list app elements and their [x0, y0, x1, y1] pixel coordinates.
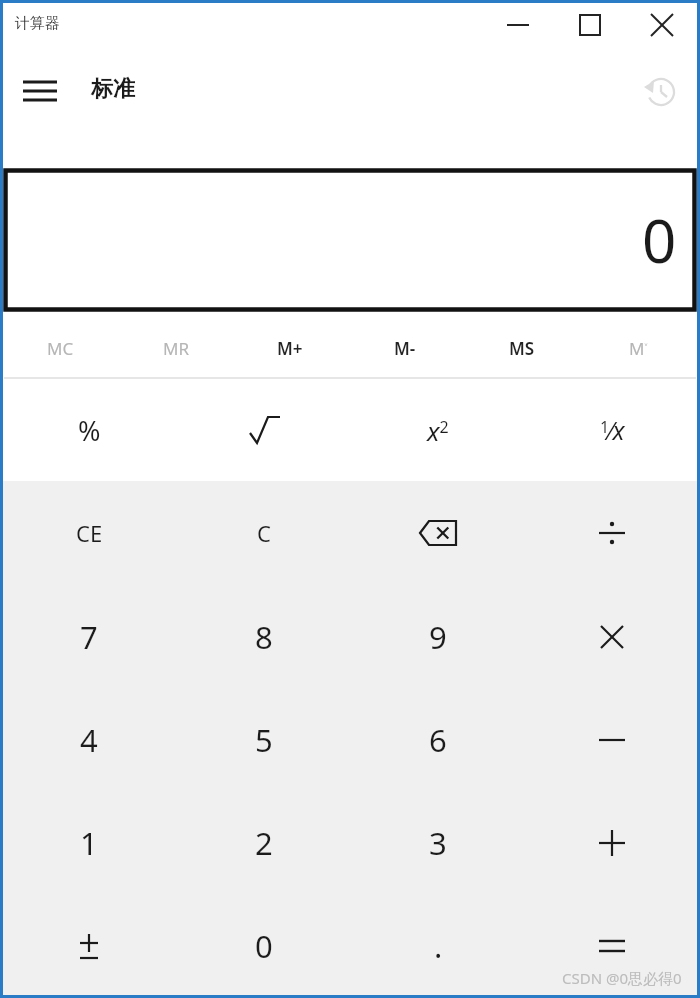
button[interactable]: Menu — [10, 64, 70, 118]
button[interactable]: Plus minus — [2, 894, 176, 997]
staticText: 8 — [255, 616, 273, 658]
staticText: MC — [47, 337, 74, 360]
button[interactable]: M- — [350, 321, 460, 375]
button[interactable]: MC — [5, 321, 115, 375]
staticText: MS — [509, 337, 535, 360]
button[interactable]: Close — [626, 2, 698, 48]
button[interactable]: Square — [351, 380, 525, 480]
button[interactable]: Maximize — [554, 2, 626, 48]
staticText: 0 — [255, 925, 273, 967]
button[interactable]: Equals — [525, 894, 699, 997]
staticText: 3 — [429, 822, 447, 864]
button[interactable]: 6 — [351, 688, 525, 791]
button[interactable]: 8 — [177, 585, 351, 688]
button[interactable]: Minimize — [482, 2, 554, 48]
button[interactable]: Plus — [525, 791, 699, 894]
staticText: % — [78, 412, 101, 449]
staticText: M˅ — [629, 337, 648, 360]
button[interactable]: Reciprocal — [525, 380, 699, 480]
button[interactable]: Clear entry — [2, 481, 176, 584]
staticText: 9 — [429, 616, 447, 658]
button[interactable]: 0 — [177, 894, 351, 997]
staticText: 5 — [255, 719, 273, 761]
button[interactable]: Decimal — [351, 894, 525, 997]
staticText: 7 — [80, 616, 98, 658]
staticText: M- — [394, 337, 416, 360]
button[interactable]: 2 — [177, 791, 351, 894]
button[interactable]: MR — [121, 321, 231, 375]
staticText: M+ — [277, 337, 303, 360]
button[interactable]: MS — [467, 321, 577, 375]
button[interactable]: 1 — [2, 791, 176, 894]
button[interactable]: 7 — [2, 585, 176, 688]
staticText: 计算器 — [15, 14, 60, 33]
button[interactable]: Percent — [2, 380, 176, 480]
button[interactable]: 5 — [177, 688, 351, 791]
staticText: 6 — [429, 719, 447, 761]
button[interactable]: Square root — [177, 380, 351, 480]
button[interactable]: 4 — [2, 688, 176, 791]
staticText: 1⁄x — [600, 413, 625, 447]
staticText: CE — [76, 518, 103, 548]
staticText: 2 — [255, 822, 273, 864]
button[interactable]: Multiply — [525, 585, 699, 688]
button[interactable]: 9 — [351, 585, 525, 688]
button[interactable]: Minus — [525, 688, 699, 791]
staticText: 4 — [80, 719, 98, 761]
staticText: C — [257, 518, 271, 548]
staticText: MR — [163, 337, 189, 360]
button[interactable]: 3 — [351, 791, 525, 894]
staticText: x2 — [427, 413, 449, 448]
button[interactable]: Backspace — [351, 481, 525, 584]
button[interactable]: M+ — [235, 321, 345, 375]
button[interactable]: Divide — [525, 481, 699, 584]
button[interactable]: Memory list — [583, 321, 693, 375]
button[interactable]: History — [636, 67, 686, 117]
staticText: 0 — [642, 199, 677, 281]
staticText: 1 — [80, 822, 98, 864]
staticText: CSDN @0思必得0 — [562, 968, 682, 988]
staticText: 标准 — [91, 75, 135, 103]
button[interactable]: Clear — [177, 481, 351, 584]
staticText: . — [434, 925, 443, 967]
